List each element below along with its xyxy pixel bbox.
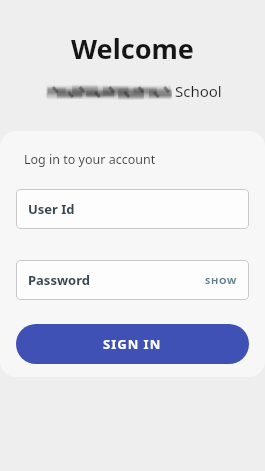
button[interactable]: Password [16,260,249,300]
staticText: School [175,81,222,101]
staticText: Log in to your account [24,151,156,168]
staticText: User Id [28,200,75,218]
button[interactable]: SHOW [193,260,249,300]
button[interactable]: User Id [16,189,249,229]
staticText: Welcome [0,30,265,67]
staticText: Password [28,271,90,289]
button[interactable]: SIGN IN [16,324,249,364]
staticText: SIGN IN [103,335,162,353]
staticText: SHOW [205,274,237,287]
